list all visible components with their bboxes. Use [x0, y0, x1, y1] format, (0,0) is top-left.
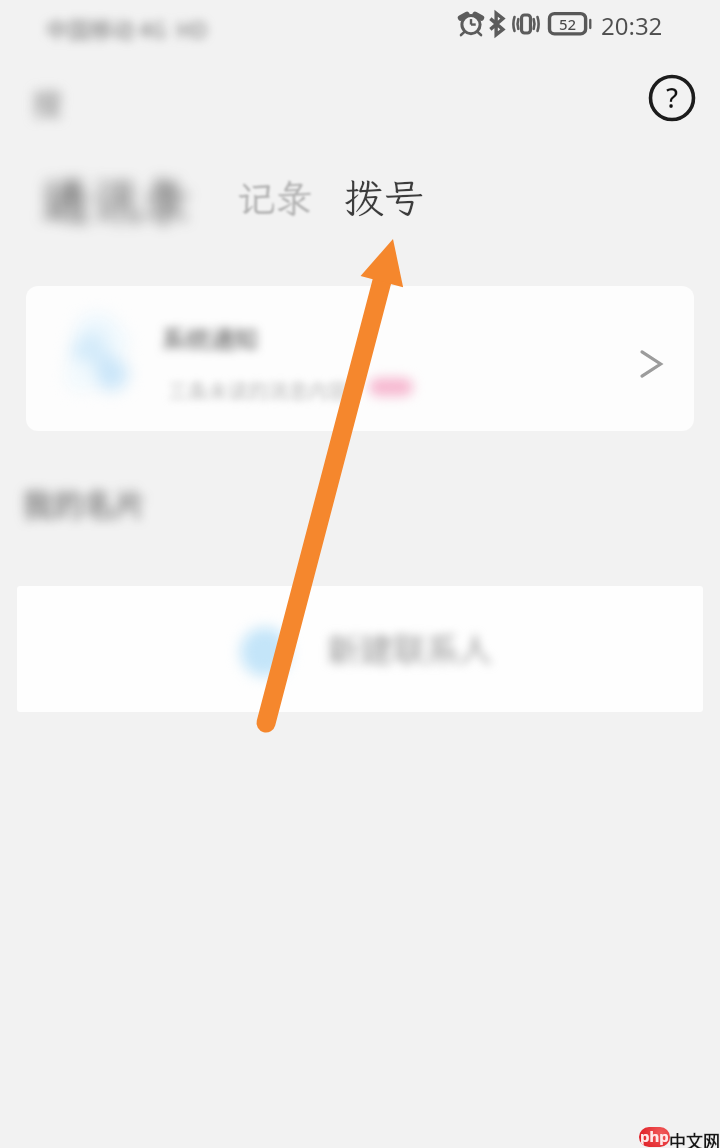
staticText: 记录	[237, 173, 314, 223]
button[interactable]: 系统通知	[26, 286, 694, 431]
staticText: 拨号	[344, 171, 424, 224]
staticText: 中文网	[669, 1128, 720, 1148]
staticText: ?	[666, 79, 679, 116]
button[interactable]: 通讯录	[16, 158, 216, 242]
staticText: 三条未读的消息内容	[168, 376, 348, 405]
staticText: 系统通知	[162, 320, 258, 355]
staticText: 通讯录	[41, 167, 191, 233]
button[interactable]: 拨号	[340, 164, 428, 230]
staticText: 中国移动 4G HD	[46, 12, 208, 44]
button[interactable]: 记录	[232, 166, 318, 230]
button[interactable]: Help	[648, 74, 696, 122]
staticText: 52	[559, 14, 577, 34]
staticText: 我的名片	[22, 480, 146, 525]
staticText: 20:32	[601, 9, 663, 42]
staticText: 新建联系人	[327, 624, 492, 672]
staticText: php	[640, 1127, 669, 1146]
staticText: 搜	[32, 80, 62, 123]
button[interactable]: 新建联系人	[17, 586, 703, 712]
